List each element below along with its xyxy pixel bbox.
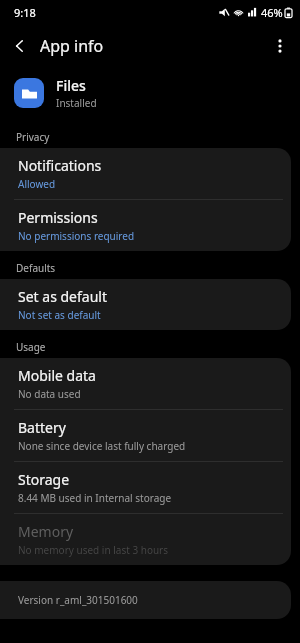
staticText: Memory	[18, 522, 74, 541]
staticText: Allowed	[18, 177, 56, 191]
staticText: Installed	[56, 96, 97, 110]
button[interactable]: Battery	[0, 410, 291, 461]
staticText: No data used	[18, 387, 81, 401]
staticText: No memory used in last 3 hours	[18, 543, 169, 557]
button[interactable]: Set as default	[0, 279, 291, 330]
staticText: 9:18	[14, 5, 36, 20]
staticText: Battery	[18, 418, 66, 437]
staticText: Not set as default	[18, 308, 101, 322]
staticText: Usage	[16, 340, 46, 354]
staticText: None since device last fully charged	[18, 439, 186, 453]
button[interactable]: Back	[0, 26, 40, 66]
staticText: App info	[40, 35, 104, 57]
staticText: Defaults	[16, 261, 56, 275]
staticText: Version r_aml_301501600	[18, 593, 138, 607]
button[interactable]: More options	[260, 26, 300, 66]
staticText: Storage	[18, 470, 70, 489]
button[interactable]: Mobile data	[0, 358, 291, 409]
staticText: Privacy	[16, 130, 50, 144]
staticText: 8.44 MB used in Internal storage	[18, 491, 172, 505]
staticText: Permissions	[18, 208, 98, 227]
staticText: 46%	[261, 5, 283, 20]
staticText: Notifications	[18, 156, 102, 175]
button[interactable]: Memory	[0, 514, 291, 565]
staticText: Files	[56, 76, 86, 95]
staticText: Set as default	[18, 287, 107, 306]
button[interactable]: Notifications	[0, 148, 291, 199]
button[interactable]: Permissions	[0, 200, 291, 251]
staticText: Mobile data	[18, 366, 96, 385]
button[interactable]: Storage	[0, 462, 291, 513]
staticText: No permissions required	[18, 229, 135, 243]
